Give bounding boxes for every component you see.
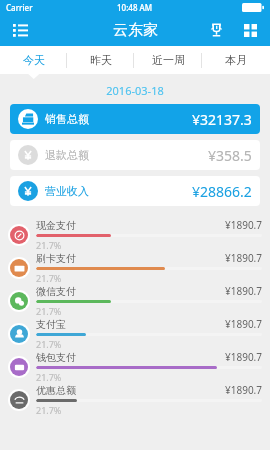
- staticText: 销售总额: [45, 112, 89, 126]
- button[interactable]: 支付宝: [0, 317, 270, 350]
- staticText: 云东家: [113, 21, 158, 40]
- staticText: 21.7%: [36, 371, 62, 383]
- button[interactable]: 钱包支付: [0, 350, 270, 383]
- staticText: 21.7%: [36, 305, 62, 317]
- staticText: 本月: [225, 53, 247, 67]
- staticText: ¥32137.3: [192, 110, 252, 129]
- staticText: ¥1890.7: [225, 383, 262, 397]
- button[interactable]: 现金支付: [0, 218, 270, 251]
- staticText: ¥1890.7: [225, 350, 262, 364]
- staticText: ¥1890.7: [225, 284, 262, 298]
- staticText: 21.7%: [36, 239, 62, 251]
- button[interactable]: 销售总额: [10, 104, 260, 134]
- button[interactable]: 近一周: [134, 46, 202, 74]
- button[interactable]: Apps: [237, 17, 263, 43]
- staticText: 21.7%: [36, 404, 62, 416]
- staticText: ¥1890.7: [225, 251, 262, 265]
- staticText: Carrier: [6, 2, 33, 13]
- staticText: 退款总额: [45, 148, 89, 162]
- button[interactable]: 退款总额: [10, 140, 260, 170]
- staticText: 营业收入: [45, 184, 89, 198]
- staticText: ¥1890.7: [225, 218, 262, 232]
- staticText: 21.7%: [36, 272, 62, 284]
- staticText: 今天: [23, 53, 45, 67]
- staticText: 昨天: [90, 53, 112, 67]
- button[interactable]: Rank: [203, 17, 229, 43]
- staticText: 刷卡支付: [36, 252, 76, 265]
- staticText: 10:48 AM: [117, 2, 153, 13]
- button[interactable]: 营业收入: [10, 176, 260, 206]
- staticText: 支付宝: [36, 318, 66, 331]
- button[interactable]: 本月: [202, 46, 270, 74]
- staticText: 微信支付: [36, 285, 76, 298]
- staticText: 21.7%: [36, 338, 62, 350]
- staticText: 近一周: [152, 53, 185, 67]
- button[interactable]: Menu: [7, 17, 33, 43]
- staticText: 现金支付: [36, 219, 76, 232]
- staticText: 钱包支付: [36, 351, 76, 364]
- staticText: ¥1890.7: [225, 317, 262, 331]
- button[interactable]: 昨天: [67, 46, 134, 74]
- button[interactable]: 今天: [0, 46, 67, 74]
- staticText: ¥358.5: [208, 146, 252, 165]
- button[interactable]: 刷卡支付: [0, 251, 270, 284]
- button[interactable]: 优惠总额: [0, 383, 270, 416]
- button[interactable]: 微信支付: [0, 284, 270, 317]
- staticText: ¥28866.2: [192, 182, 252, 201]
- staticText: 优惠总额: [36, 384, 76, 397]
- staticText: 2016-03-18: [0, 83, 270, 98]
